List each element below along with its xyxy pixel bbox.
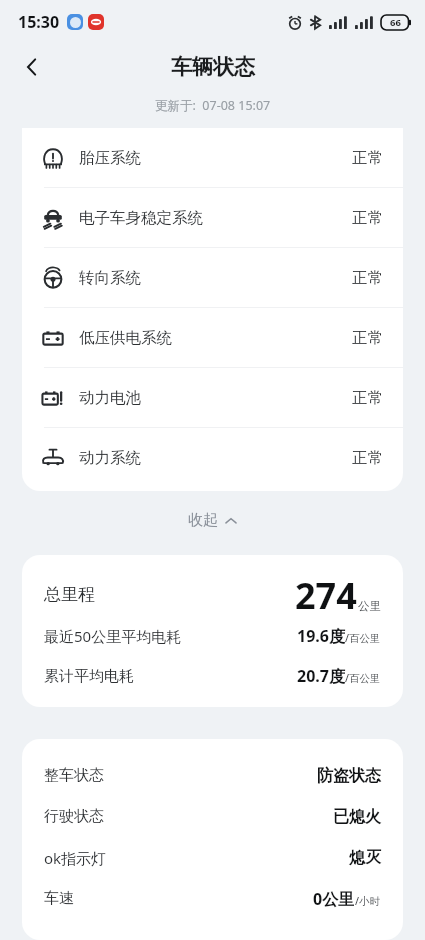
button[interactable]: 动力电池 (22, 368, 403, 427)
button[interactable]: 胎压系统 (22, 128, 403, 187)
staticText: /百公里 (345, 671, 381, 685)
staticText: 20.7度 (297, 665, 345, 687)
staticText: 66 (390, 16, 401, 29)
staticText: 动力系统 (79, 448, 141, 468)
staticText: 更新于: 07-08 15:07 (155, 97, 271, 114)
staticText: 总里程 (44, 584, 95, 605)
staticText: /小时 (355, 894, 381, 908)
button[interactable]: 整车状态 (44, 755, 381, 796)
button[interactable]: 电子车身稳定系统 (22, 188, 403, 247)
staticText: 转向系统 (79, 268, 141, 288)
staticText: 274 (295, 571, 357, 617)
button[interactable]: 收起 (170, 503, 255, 538)
staticText: 公里 (358, 599, 381, 613)
button[interactable]: 低压供电系统 (22, 308, 403, 367)
staticText: 收起 (188, 511, 218, 530)
staticText: 累计平均电耗 (44, 667, 134, 686)
staticText: 正常 (352, 148, 383, 168)
staticText: 最近50公里平均电耗 (44, 626, 182, 646)
staticText: 已熄火 (333, 807, 381, 827)
button[interactable]: 转向系统 (22, 248, 403, 307)
button[interactable]: 行驶状态 (44, 796, 381, 837)
staticText: 正常 (352, 448, 383, 468)
staticText: 正常 (352, 388, 383, 408)
staticText: 正常 (352, 208, 383, 228)
staticText: 防盗状态 (317, 766, 381, 786)
staticText: 0公里 (313, 888, 355, 910)
staticText: ok指示灯 (44, 848, 107, 868)
staticText: 胎压系统 (79, 148, 141, 168)
staticText: 车辆状态 (171, 54, 255, 80)
staticText: 电子车身稳定系统 (79, 208, 203, 228)
staticText: 动力电池 (79, 388, 141, 408)
staticText: 行驶状态 (44, 807, 104, 826)
staticText: 正常 (352, 328, 383, 348)
button[interactable]: Back (10, 45, 54, 89)
button[interactable]: 最近50公里平均电耗 (44, 623, 381, 649)
staticText: 低压供电系统 (79, 328, 172, 348)
staticText: 熄灭 (349, 848, 381, 868)
staticText: 正常 (352, 268, 383, 288)
button[interactable]: 累计平均电耗 (44, 663, 381, 689)
staticText: /百公里 (345, 631, 381, 645)
button[interactable]: 动力系统 (22, 428, 403, 487)
button[interactable]: 总里程 (44, 571, 381, 617)
staticText: 19.6度 (297, 625, 345, 647)
staticText: 车速 (44, 889, 74, 908)
button[interactable]: ok指示灯 (44, 837, 381, 878)
staticText: 整车状态 (44, 766, 104, 785)
staticText: 15:30 (18, 11, 60, 33)
button[interactable]: 车速 (44, 878, 381, 919)
